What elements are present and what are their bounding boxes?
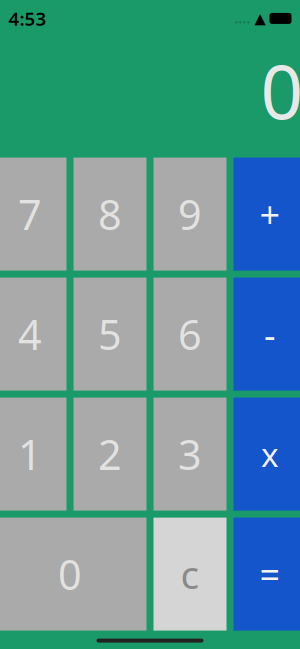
button[interactable]: c: [153, 518, 226, 631]
staticText: 8: [98, 187, 122, 241]
button[interactable]: 8: [73, 158, 146, 271]
staticText: 7: [18, 187, 42, 241]
button[interactable]: x: [233, 398, 300, 511]
staticText: 4:53: [8, 6, 46, 31]
staticText: 5: [98, 307, 122, 361]
staticText: 2: [98, 427, 122, 481]
staticText: 4: [18, 307, 42, 361]
staticText: x: [261, 432, 279, 476]
button[interactable]: +: [233, 158, 300, 271]
staticText: -: [264, 310, 276, 358]
button[interactable]: 3: [153, 398, 226, 511]
staticText: 0: [260, 40, 300, 140]
button[interactable]: 4: [0, 278, 66, 391]
staticText: c: [180, 548, 199, 600]
button[interactable]: 9: [153, 158, 226, 271]
staticText: 6: [178, 307, 202, 361]
staticText: 9: [178, 187, 202, 241]
staticText: 0: [58, 547, 82, 601]
staticText: ....: [234, 10, 250, 27]
staticText: 3: [178, 427, 202, 481]
staticText: 1: [18, 427, 42, 481]
staticText: +: [259, 190, 280, 238]
staticText: ▲: [254, 10, 265, 27]
button[interactable]: -: [233, 278, 300, 391]
button[interactable]: 1: [0, 398, 66, 511]
button[interactable]: 0: [0, 518, 146, 631]
button[interactable]: 5: [73, 278, 146, 391]
button[interactable]: 2: [73, 398, 146, 511]
button[interactable]: 6: [153, 278, 226, 391]
button[interactable]: =: [233, 518, 300, 631]
staticText: =: [259, 550, 280, 598]
button[interactable]: 7: [0, 158, 66, 271]
